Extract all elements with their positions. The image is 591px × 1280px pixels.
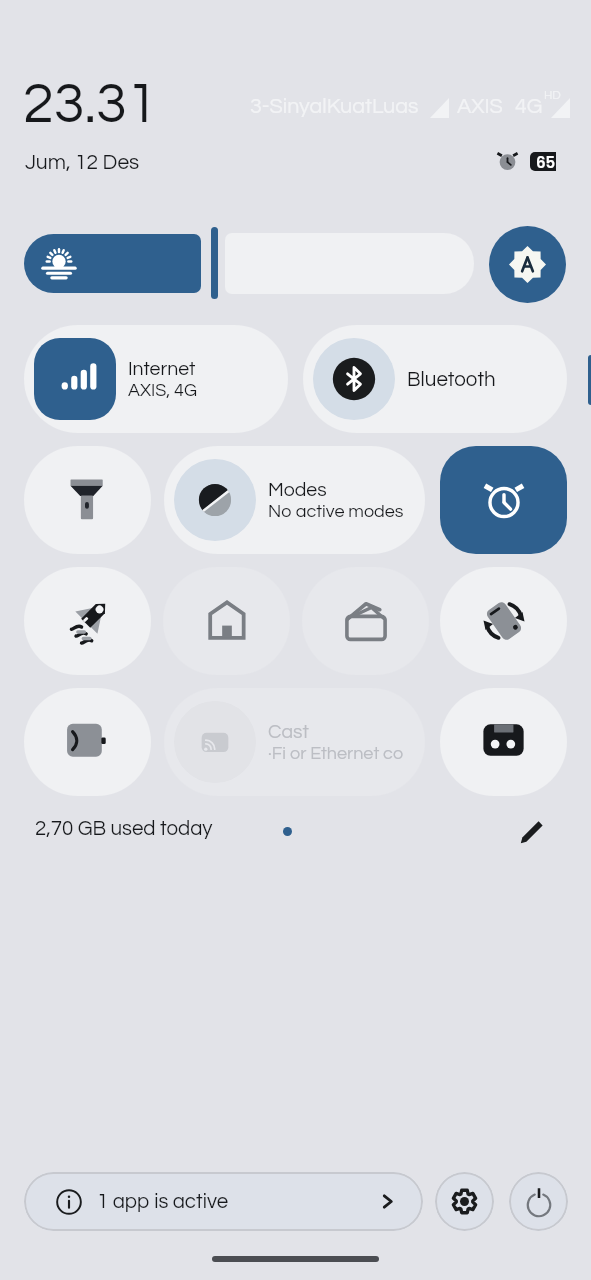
button[interactable]: Wallet — [302, 567, 429, 675]
button[interactable]: Settings — [435, 1172, 494, 1231]
staticText: 23.31 — [23, 76, 158, 134]
staticText: HD — [544, 89, 561, 101]
staticText: ·Fi or Ethernet co — [268, 744, 404, 763]
button[interactable]: Auto rotate — [440, 567, 567, 675]
button[interactable]: Cast — [164, 688, 425, 796]
button[interactable]: Internet — [24, 325, 288, 433]
button[interactable]: Home — [163, 567, 290, 675]
staticText: 4G — [515, 95, 543, 117]
staticText: 2,70 GB used today — [35, 818, 213, 839]
staticText: Jum, 12 Des — [25, 152, 140, 174]
button[interactable]: Alarm — [440, 446, 567, 554]
staticText: Cast — [268, 722, 309, 742]
staticText: No active modes — [268, 502, 404, 521]
button[interactable]: Auto brightness — [489, 226, 566, 303]
button[interactable]: Device controls — [440, 688, 567, 796]
staticText: Modes — [268, 480, 327, 500]
button[interactable]: Power — [509, 1172, 568, 1231]
staticText: AXIS, 4G — [128, 381, 197, 400]
button[interactable]: Rocket — [24, 567, 151, 675]
button[interactable]: Modes — [164, 446, 425, 554]
button[interactable]: Battery saver — [24, 688, 151, 796]
button[interactable]: Brightness — [24, 234, 201, 293]
staticText: Internet — [128, 359, 196, 379]
button[interactable]: Flashlight — [24, 446, 151, 554]
staticText: AXIS — [457, 95, 503, 117]
button[interactable]: 1 app is active — [24, 1172, 423, 1231]
button[interactable]: Edit tiles — [510, 810, 554, 854]
button[interactable]: Bluetooth — [303, 325, 567, 433]
staticText: 3-SinyalKuatLuas — [250, 95, 419, 117]
staticText: 65 — [536, 152, 556, 171]
staticText: 1 app is active — [97, 1191, 229, 1212]
staticText: Bluetooth — [407, 369, 496, 390]
